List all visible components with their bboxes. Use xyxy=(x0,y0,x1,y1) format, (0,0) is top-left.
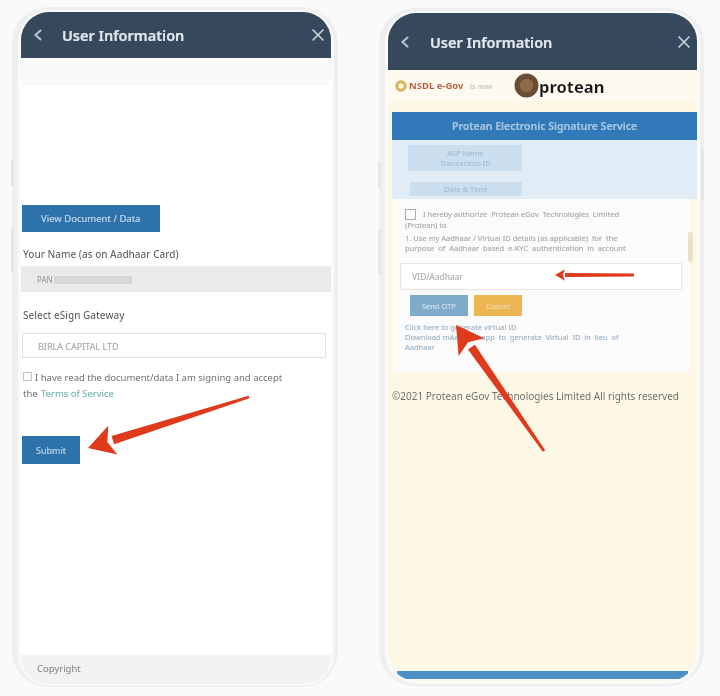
button[interactable]: Send OTP xyxy=(410,295,468,316)
button[interactable]: Cancel xyxy=(474,295,522,316)
staticText: Download mAadhaar app to generate Virtua… xyxy=(405,332,619,342)
staticText: protean xyxy=(539,75,605,97)
staticText: BIRLA CAPITAL LTD xyxy=(38,340,119,352)
staticText: Submit xyxy=(36,444,67,456)
staticText: PAN xyxy=(37,274,53,285)
button[interactable]: Authorize xyxy=(405,209,416,220)
staticText: Cancel xyxy=(486,301,510,311)
button[interactable]: Terms of Service xyxy=(41,387,114,400)
button[interactable]: Close xyxy=(304,21,331,49)
staticText: User Information xyxy=(430,32,553,52)
staticText: Transaction ID xyxy=(440,158,491,168)
button[interactable]: Click here to generate virtual ID xyxy=(405,322,517,332)
staticText: the xyxy=(23,387,41,400)
staticText: ©2021 Protean eGov Technologies Limited … xyxy=(392,389,679,403)
staticText: Copyright xyxy=(37,662,81,675)
button[interactable]: Back xyxy=(390,27,420,57)
staticText: Your Name (as on Aadhaar Card) xyxy=(23,247,179,261)
button[interactable]: Submit xyxy=(22,436,80,464)
staticText: Aadhaar xyxy=(405,342,435,352)
staticText: I have read the document/data I am signi… xyxy=(35,371,283,384)
staticText: Select eSign Gateway xyxy=(23,308,125,322)
staticText: 1. Use my Aadhaar / Virtual ID details (… xyxy=(405,233,618,243)
button[interactable]: Accept terms xyxy=(23,372,32,381)
staticText: NSDL e-Gov xyxy=(409,79,464,92)
staticText: Send OTP xyxy=(422,301,456,311)
staticText: (Protean) to xyxy=(405,220,447,230)
button[interactable]: View Document / Data xyxy=(22,205,160,232)
button[interactable]: Back xyxy=(23,20,53,50)
staticText: VID/Aadhaar xyxy=(412,271,464,283)
staticText: is now xyxy=(470,81,493,91)
staticText: View Document / Data xyxy=(41,212,141,225)
staticText: I hereby authorize Protean eGov Technolo… xyxy=(423,209,620,219)
staticText: purpose of Aadhaar based e-KYC authentic… xyxy=(405,243,626,253)
staticText: Protean Electronic Signature Service xyxy=(452,119,638,133)
button[interactable]: Close xyxy=(670,28,697,56)
staticText: ASP Name xyxy=(447,148,484,158)
staticText: Date & Time xyxy=(444,184,488,194)
staticText: User Information xyxy=(62,25,185,45)
button[interactable]: BIRLA CAPITAL LTD xyxy=(22,333,326,358)
